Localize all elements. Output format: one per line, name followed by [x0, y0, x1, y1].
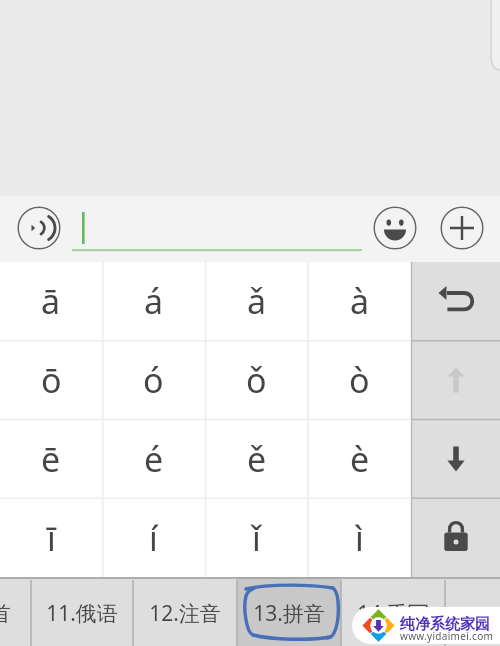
staticText: 纯净系统家园: [400, 615, 490, 634]
button[interactable]: ǒ: [205, 340, 308, 419]
staticText: í: [149, 515, 158, 561]
button[interactable]: Emoji: [373, 206, 417, 250]
button[interactable]: Page down: [411, 419, 500, 498]
button[interactable]: ī: [0, 498, 102, 577]
button[interactable]: ì: [308, 498, 411, 577]
button[interactable]: 11.俄语: [31, 577, 133, 646]
staticText: 11.俄语: [46, 599, 118, 628]
staticText: 12.注音: [149, 599, 221, 628]
button[interactable]: ǎ: [205, 262, 308, 340]
button[interactable]: ǐ: [205, 498, 308, 577]
staticText: ì: [355, 515, 364, 561]
button[interactable]: 13.拼音: [237, 577, 341, 646]
button[interactable]: ó: [102, 340, 205, 419]
staticText: ē: [41, 436, 61, 482]
staticText: è: [350, 436, 370, 482]
staticText: 首: [0, 601, 11, 627]
button[interactable]: á: [102, 262, 205, 340]
button[interactable]: 首: [0, 577, 31, 646]
staticText: ō: [41, 357, 62, 403]
button[interactable]: ā: [0, 262, 102, 340]
button[interactable]: Voice input: [17, 206, 61, 250]
button[interactable]: ō: [0, 340, 102, 419]
button[interactable]: Page up: [411, 340, 500, 419]
button[interactable]: 14.手写: [341, 577, 445, 646]
staticText: ó: [143, 357, 164, 403]
staticText: ī: [47, 515, 56, 561]
staticText: á: [144, 278, 164, 324]
button[interactable]: Lock: [411, 498, 500, 577]
button[interactable]: à: [308, 262, 411, 340]
staticText: 14.手写: [357, 599, 429, 628]
button[interactable]: Add: [440, 206, 484, 250]
button[interactable]: í: [102, 498, 205, 577]
button[interactable]: é: [102, 419, 205, 498]
button[interactable]: è: [308, 419, 411, 498]
button[interactable]: Return: [411, 262, 500, 340]
staticText: ě: [247, 436, 267, 482]
staticText: é: [144, 436, 164, 482]
staticText: ò: [349, 357, 370, 403]
staticText: ā: [41, 278, 61, 324]
button[interactable]: ò: [308, 340, 411, 419]
staticText: www.yidaimei.com: [400, 629, 494, 643]
button[interactable]: ē: [0, 419, 102, 498]
staticText: 13.拼音: [253, 599, 325, 628]
button[interactable]: 12.注音: [133, 577, 237, 646]
staticText: ǒ: [246, 357, 267, 403]
button[interactable]: ě: [205, 419, 308, 498]
staticText: ǎ: [247, 278, 267, 324]
staticText: ǐ: [252, 515, 261, 561]
staticText: à: [350, 278, 370, 324]
